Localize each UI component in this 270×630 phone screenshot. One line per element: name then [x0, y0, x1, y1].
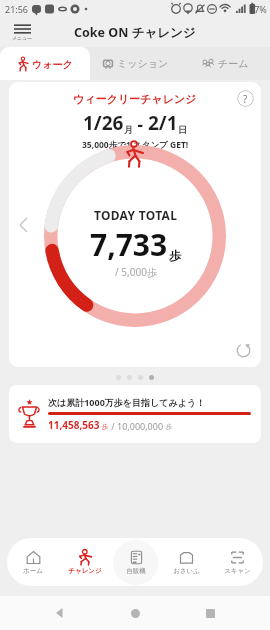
staticText: 歩 [169, 248, 181, 263]
button[interactable]: チーム [180, 47, 270, 80]
staticText: / 10,000,000 [109, 420, 164, 432]
button[interactable]: 更新 [232, 339, 254, 361]
button[interactable]: 自販機 [110, 538, 161, 586]
staticText: ? [243, 92, 248, 106]
staticText: TODAY TOTAL [94, 207, 178, 223]
button[interactable]: ミッション [90, 47, 180, 80]
staticText: 11,458,563 [48, 418, 100, 432]
staticText: 1/26 [83, 110, 124, 136]
staticText: メニュー [12, 35, 33, 41]
staticText: スキャン [224, 567, 251, 575]
staticText: 日 [178, 124, 187, 135]
staticText: - [133, 113, 148, 136]
staticText: ウォーク [32, 58, 73, 71]
staticText: 次は累計1000万歩を目指してみよう！ [48, 396, 206, 408]
button[interactable]: 前へ [13, 210, 33, 240]
staticText: チーム [218, 57, 249, 70]
staticText: 17% [249, 3, 267, 15]
staticText: ミッション [117, 57, 169, 70]
button[interactable]: Recent apps [195, 598, 225, 628]
staticText: 自販機 [126, 567, 146, 575]
button[interactable]: 次は累計1000万歩を目指してみよう！ [9, 385, 261, 443]
staticText: 7,733 [90, 224, 168, 265]
button[interactable]: Back [45, 598, 75, 628]
staticText: 35,000歩で1 スタンプ GET! [82, 139, 189, 151]
button[interactable]: ウォーク [0, 47, 90, 80]
staticText: 歩 [164, 422, 173, 431]
button[interactable]: スキャン [212, 538, 263, 586]
button[interactable]: おさいふ [161, 538, 212, 586]
staticText: 2/1 [148, 110, 178, 136]
button[interactable]: ヘルプ [237, 90, 254, 107]
staticText: / 5,000歩 [115, 265, 157, 279]
staticText: ホーム [23, 567, 43, 575]
staticText: 21:56 [5, 3, 29, 15]
staticText: 月 [124, 124, 133, 135]
staticText: 歩 [100, 422, 109, 431]
button[interactable]: Home [120, 598, 150, 628]
staticText: チャレンジ [68, 567, 102, 575]
button[interactable]: メニュー [8, 21, 37, 43]
staticText: Coke ON チャレンジ [74, 24, 196, 41]
staticText: おさいふ [173, 567, 200, 575]
button[interactable]: チャレンジ [59, 538, 110, 586]
button[interactable]: ホーム [7, 538, 59, 586]
staticText: ウィークリーチャレンジ [73, 92, 197, 106]
